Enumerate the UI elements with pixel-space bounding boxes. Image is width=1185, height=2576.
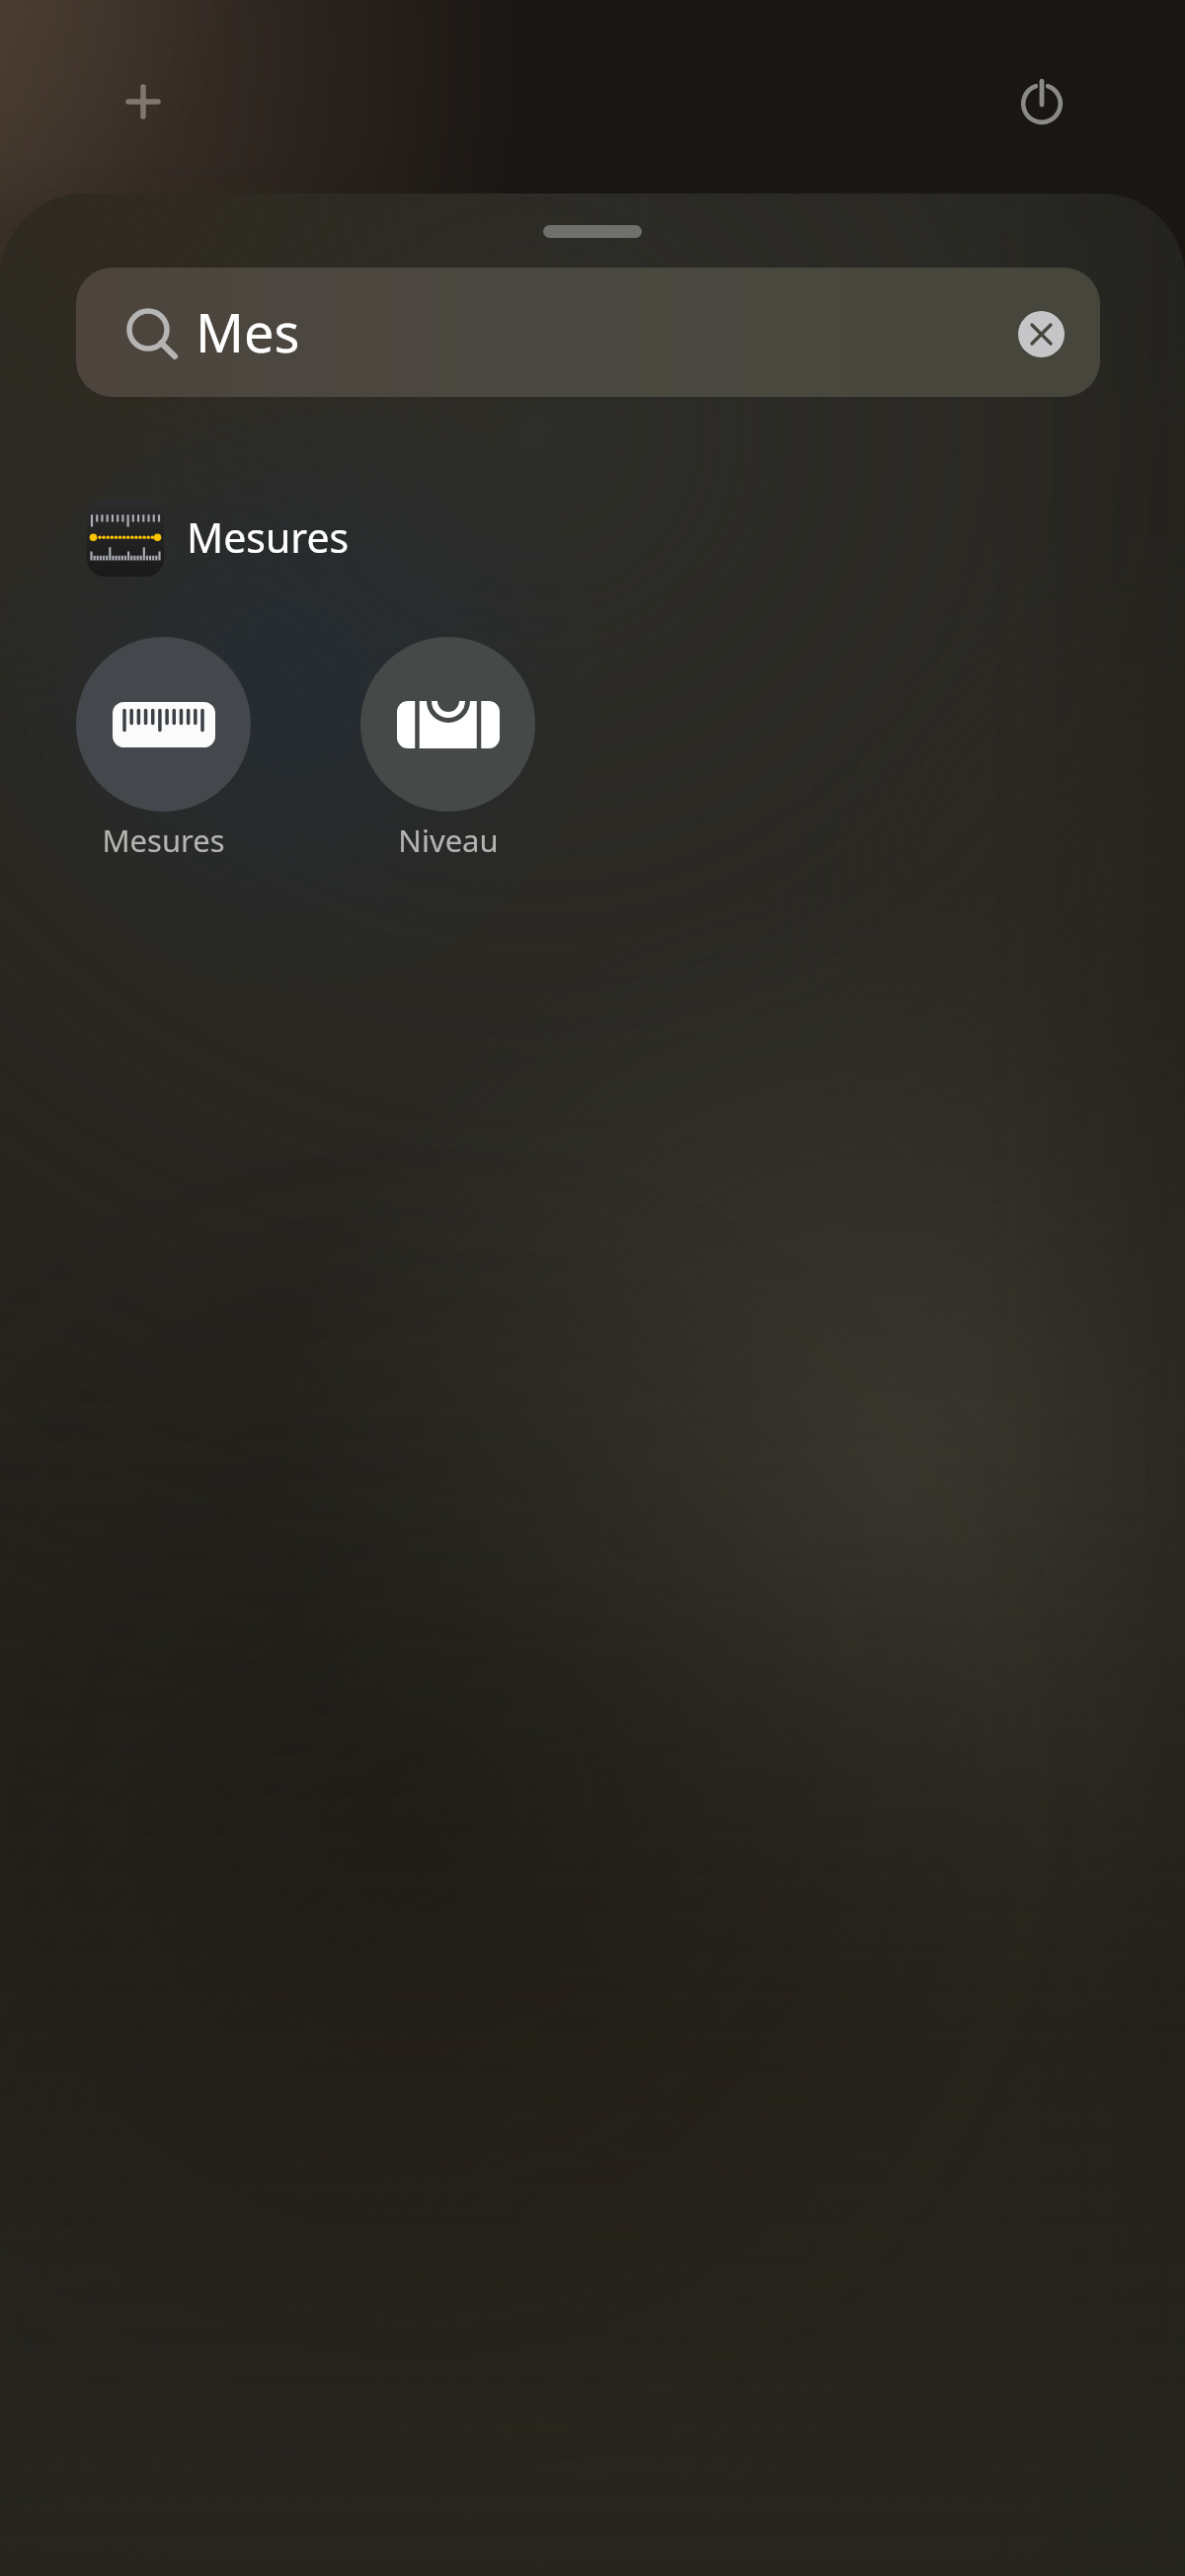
button[interactable]: Mesures: [87, 494, 1185, 583]
button[interactable]: Niveau: [360, 637, 535, 861]
button[interactable]: Mes: [76, 268, 1100, 397]
button[interactable]: Add widget: [104, 62, 183, 141]
staticText: Niveau: [398, 820, 499, 861]
staticText: Mesures: [187, 509, 350, 565]
staticText: Mes: [196, 295, 300, 368]
button[interactable]: Mesures: [76, 637, 251, 861]
button[interactable]: Clear search: [1018, 311, 1065, 357]
button[interactable]: Power: [1002, 61, 1081, 140]
staticText: Mesures: [102, 820, 225, 861]
